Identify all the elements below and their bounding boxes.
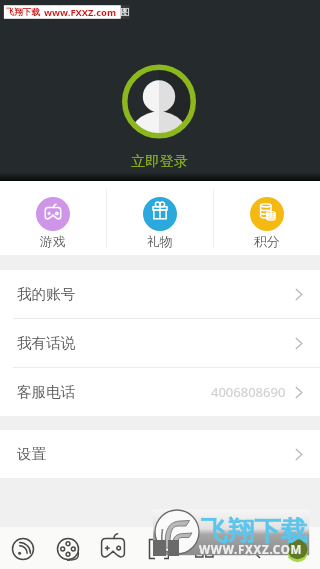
- button[interactable]: Apps: [182, 527, 228, 569]
- button[interactable]: Me: [274, 527, 320, 569]
- button[interactable]: 我有话说: [0, 319, 320, 368]
- button[interactable]: Feed: [0, 527, 45, 569]
- button[interactable]: 我的账号: [0, 270, 320, 319]
- staticText: 飞翔下载: [201, 514, 308, 548]
- button[interactable]: Books: [136, 527, 182, 569]
- button[interactable]: Search: [228, 527, 274, 569]
- button[interactable]: 游戏: [0, 181, 106, 255]
- staticText: 游戏: [40, 234, 66, 250]
- staticText: WWW.FXXZ.COM: [199, 542, 303, 558]
- staticText: 礼物: [147, 234, 173, 250]
- staticText: 图: [121, 7, 130, 18]
- staticText: 客服电话: [17, 383, 76, 401]
- button[interactable]: 设置: [0, 430, 320, 478]
- button[interactable]: 礼物: [107, 181, 213, 255]
- button[interactable]: Games: [90, 527, 136, 569]
- staticText: 4006808690: [211, 383, 286, 401]
- button[interactable]: Video: [45, 527, 90, 569]
- staticText: 我的账号: [17, 285, 76, 303]
- button[interactable]: 立即登录: [131, 152, 189, 170]
- staticText: www.FXXZ.com: [44, 6, 117, 19]
- button[interactable]: 积分: [214, 181, 320, 255]
- button[interactable]: 客服电话: [0, 368, 320, 416]
- staticText: 积分: [254, 234, 280, 250]
- staticText: 设置: [17, 445, 47, 463]
- staticText: 我有话说: [17, 334, 76, 352]
- staticText: 飞翔下载: [6, 7, 40, 18]
